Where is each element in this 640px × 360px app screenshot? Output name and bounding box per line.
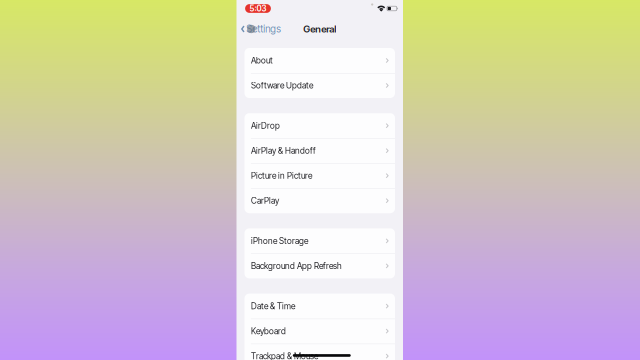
staticText: iPhone Storage [251, 236, 308, 246]
staticText: Software Update [251, 80, 313, 91]
button[interactable]: Background App Refresh [244, 253, 395, 278]
button[interactable]: About [244, 48, 395, 73]
button[interactable]: Date & Time [244, 294, 395, 319]
button[interactable]: Trackpad & Mouse [244, 344, 395, 360]
button[interactable]: Settings [241, 20, 281, 38]
button[interactable]: AirPlay & Handoff [244, 138, 395, 163]
button[interactable]: CarPlay [244, 188, 395, 213]
staticText: 5:03 [249, 4, 266, 13]
staticText: Date & Time [251, 301, 295, 311]
staticText: General [303, 23, 336, 35]
staticText: Picture in Picture [251, 171, 312, 181]
staticText: Keyboard [251, 326, 286, 336]
staticText: Trackpad & Mouse [251, 351, 318, 360]
button[interactable]: Keyboard [244, 319, 395, 344]
button[interactable]: Software Update [244, 73, 395, 98]
staticText: CarPlay [251, 196, 279, 206]
staticText: Settings [246, 23, 281, 35]
staticText: AirDrop [251, 121, 280, 131]
button[interactable]: AirDrop [244, 113, 395, 138]
button[interactable]: Picture in Picture [244, 163, 395, 188]
staticText: Background App Refresh [251, 261, 342, 271]
staticText: About [251, 55, 273, 66]
staticText: AirPlay & Handoff [251, 146, 316, 156]
button[interactable]: iPhone Storage [244, 228, 395, 253]
